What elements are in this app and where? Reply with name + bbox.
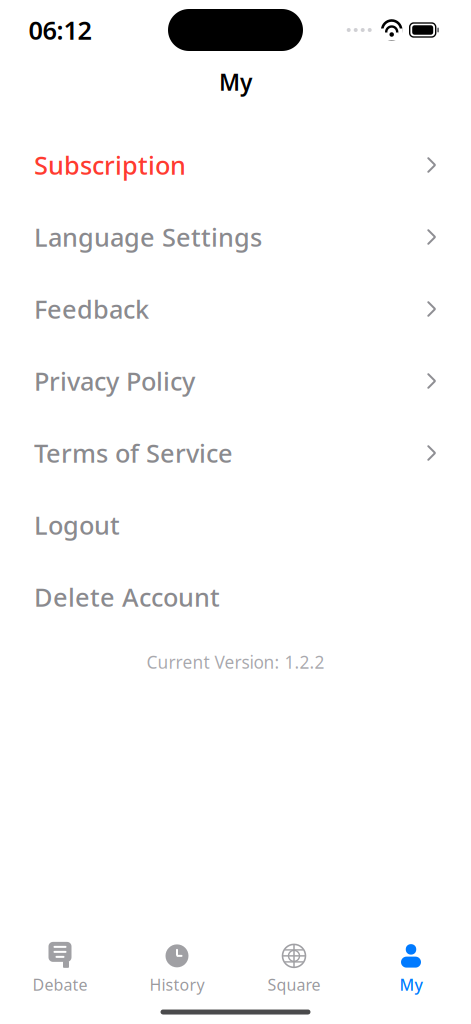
staticText: Delete Account [34, 580, 220, 614]
staticText: History [149, 974, 204, 995]
button[interactable]: Delete Account [0, 561, 471, 633]
staticText: Privacy Policy [34, 364, 195, 398]
staticText: Square [267, 974, 320, 995]
staticText: Language Settings [34, 220, 262, 254]
button[interactable]: My [352, 938, 469, 1000]
button[interactable]: Terms of Service [0, 417, 471, 489]
staticText: Current Version: 1.2.2 [146, 650, 324, 673]
staticText: Subscription [34, 148, 186, 182]
button[interactable]: Subscription [0, 129, 471, 201]
button[interactable]: History [118, 938, 235, 1000]
staticText: Terms of Service [34, 436, 233, 470]
button[interactable]: Privacy Policy [0, 345, 471, 417]
button[interactable]: Feedback [0, 273, 471, 345]
button[interactable]: Language Settings [0, 201, 471, 273]
button[interactable]: Debate [1, 938, 118, 1000]
staticText: Debate [32, 974, 87, 995]
staticText: 06:12 [28, 13, 91, 47]
staticText: My [399, 974, 422, 995]
staticText: Feedback [34, 292, 149, 326]
button[interactable]: Logout [0, 489, 471, 561]
staticText: Logout [34, 508, 120, 542]
staticText: My [219, 67, 252, 97]
button[interactable]: Square [235, 938, 352, 1000]
